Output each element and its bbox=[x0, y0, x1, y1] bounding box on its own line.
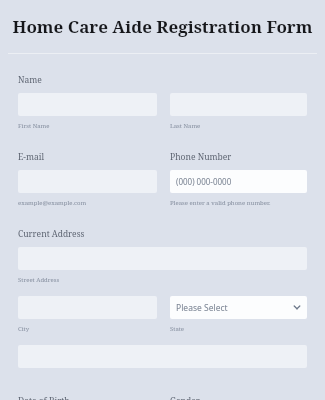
staticText: Gender bbox=[170, 395, 200, 400]
staticText: Home Care Aide Registration Form bbox=[12, 15, 313, 38]
staticText: Please Select bbox=[176, 302, 228, 314]
staticText: Last Name bbox=[170, 122, 201, 130]
other: Open dropdown bbox=[293, 304, 301, 312]
button[interactable]: (000) 000-0000 bbox=[170, 170, 307, 193]
staticText: Street Address bbox=[18, 276, 60, 284]
staticText: State bbox=[170, 325, 185, 333]
staticText: Phone Number bbox=[170, 151, 232, 163]
button[interactable]: Please Select bbox=[170, 296, 307, 319]
staticText: First Name bbox=[18, 122, 50, 130]
staticText: City bbox=[18, 325, 30, 333]
staticText: Please enter a valid phone number. bbox=[170, 199, 271, 207]
staticText: Current Address bbox=[18, 228, 85, 240]
staticText: E-mail bbox=[18, 151, 45, 163]
staticText: (000) 000-0000 bbox=[176, 176, 232, 187]
staticText: Date of Birth bbox=[18, 395, 70, 400]
staticText: Name bbox=[18, 74, 42, 86]
staticText: example@example.com bbox=[18, 199, 87, 207]
